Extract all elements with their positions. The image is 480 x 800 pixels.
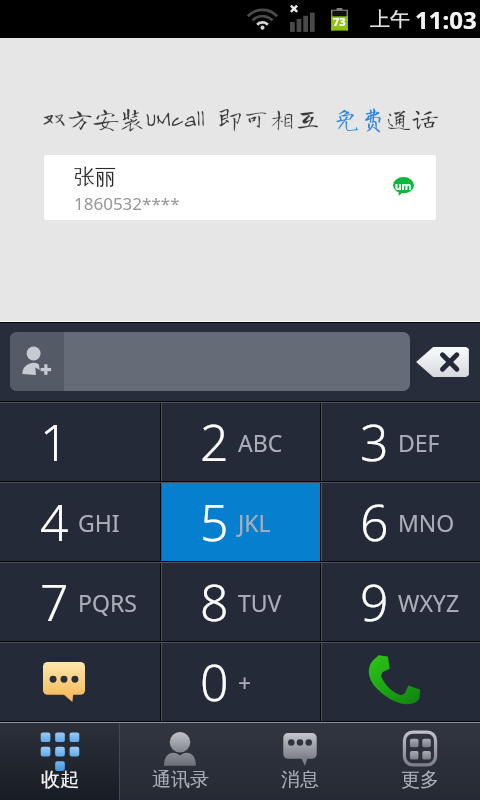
staticText: 3 xyxy=(360,408,389,476)
staticText: DEF xyxy=(398,427,440,458)
staticText: 6 xyxy=(360,488,389,556)
button[interactable]: Add contact xyxy=(10,332,410,391)
staticText: + xyxy=(238,667,252,698)
button[interactable]: 1 xyxy=(0,403,160,481)
staticText: 上午 xyxy=(370,7,410,32)
staticText: 消息 xyxy=(281,768,319,792)
button[interactable]: Add contact xyxy=(10,332,64,391)
staticText: 更多 xyxy=(401,768,439,792)
staticText: JKL xyxy=(238,507,271,538)
button[interactable]: 7 xyxy=(0,563,160,641)
button[interactable]: 5 xyxy=(160,483,320,561)
staticText: 9 xyxy=(360,568,389,636)
staticText: 11:03 xyxy=(415,3,477,36)
button[interactable]: 3 xyxy=(320,403,480,481)
staticText: 5 xyxy=(200,488,229,556)
button[interactable] xyxy=(0,643,160,721)
button[interactable]: 8 xyxy=(160,563,320,641)
button[interactable] xyxy=(320,643,480,721)
button[interactable]: 张丽 xyxy=(44,155,436,220)
staticText: 8 xyxy=(200,568,229,636)
staticText: um xyxy=(395,179,412,193)
staticText: ABC xyxy=(238,427,283,458)
staticText: 2 xyxy=(200,408,229,476)
button[interactable]: 9 xyxy=(320,563,480,641)
staticText: GHI xyxy=(78,507,120,538)
staticText: TUV xyxy=(238,587,282,618)
button[interactable]: 更多 xyxy=(360,723,480,800)
staticText: 1 xyxy=(40,408,69,476)
staticText: 7 xyxy=(40,568,69,636)
button[interactable]: 6 xyxy=(320,483,480,561)
staticText: PQRS xyxy=(78,587,137,618)
staticText: 通讯录 xyxy=(152,768,209,792)
button[interactable]: 2 xyxy=(160,403,320,481)
staticText: 张丽 xyxy=(74,164,116,190)
button[interactable]: 收起 xyxy=(0,723,120,800)
staticText: 0 xyxy=(200,648,229,716)
button[interactable]: 0 xyxy=(160,643,320,721)
staticText: 73 xyxy=(333,14,346,29)
button[interactable]: 通讯录 xyxy=(120,723,240,800)
staticText: MNO xyxy=(398,507,455,538)
staticText: 收起 xyxy=(41,768,79,792)
staticText: 双方安装UMcall 即可相互 免费通话 xyxy=(41,105,439,131)
button[interactable]: Backspace xyxy=(415,344,470,380)
staticText: WXYZ xyxy=(398,587,460,618)
button[interactable]: 消息 xyxy=(240,723,360,800)
staticText: 1860532**** xyxy=(74,192,180,215)
staticText: 4 xyxy=(40,488,69,556)
button[interactable]: 4 xyxy=(0,483,160,561)
